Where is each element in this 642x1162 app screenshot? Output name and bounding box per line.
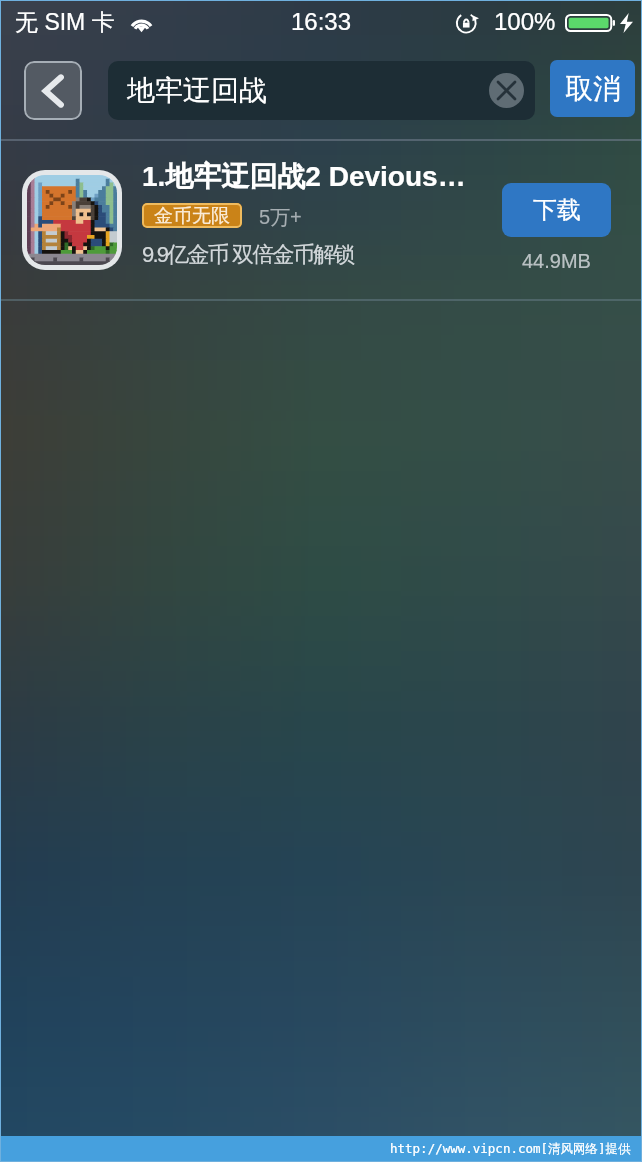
staticText: http://www.vipcn.com[清风网络]提供 xyxy=(390,1141,631,1157)
button[interactable]: Clear text xyxy=(489,73,524,108)
button[interactable]: Back xyxy=(24,61,82,120)
button[interactable]: 地牢迂回战 xyxy=(108,61,535,120)
button[interactable]: 下载 xyxy=(502,183,611,237)
staticText: 44.9MB xyxy=(522,250,591,272)
staticText: 5万+ xyxy=(259,205,302,230)
staticText: 无 SIM 卡 xyxy=(15,8,115,37)
staticText: 金币无限 xyxy=(154,204,230,228)
staticText: 下载 xyxy=(533,195,581,225)
button[interactable]: 取消 xyxy=(550,60,635,117)
staticText: 取消 xyxy=(565,71,621,106)
staticText: 1.地牢迂回战2 Devious… xyxy=(142,159,466,194)
staticText: 地牢迂回战 xyxy=(127,73,267,108)
staticText: 16:33 xyxy=(291,8,352,35)
staticText: 9.9亿金币 双倍金币解锁 xyxy=(142,241,354,269)
button[interactable]: 1.地牢迂回战2 Devious… xyxy=(0,141,642,299)
staticText: 100% xyxy=(494,8,556,35)
